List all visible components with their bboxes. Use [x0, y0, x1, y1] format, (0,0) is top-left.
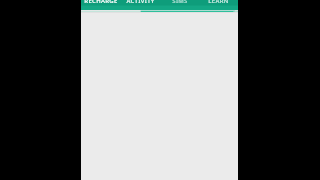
button[interactable]: ACTIVITY	[121, 0, 160, 10]
staticText: RECHARGE	[84, 0, 118, 5]
button[interactable]: RECHARGE	[81, 0, 121, 10]
staticText: LEARN	[208, 0, 229, 5]
staticText: ACTIVITY	[126, 0, 155, 5]
staticText: SIMS	[172, 0, 188, 5]
button[interactable]: SIMS	[160, 0, 199, 10]
button[interactable]: LEARN	[199, 0, 238, 10]
